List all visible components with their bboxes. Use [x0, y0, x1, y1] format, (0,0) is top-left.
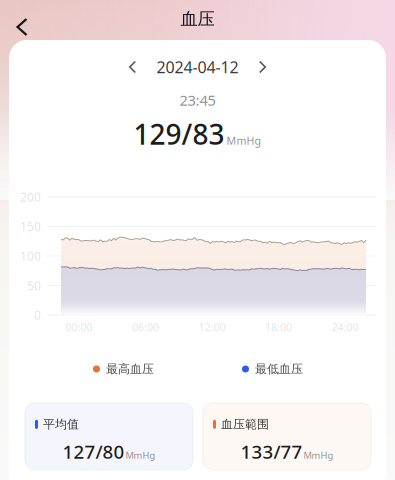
staticText: 200 — [20, 189, 41, 205]
button[interactable]: 血压範围 — [203, 403, 371, 470]
button[interactable]: Back — [0, 12, 44, 42]
staticText: 06:00 — [132, 320, 159, 334]
button[interactable]: Previous day — [119, 54, 145, 80]
staticText: MmHg — [303, 449, 333, 461]
staticText: 12:00 — [198, 320, 225, 334]
staticText: 133/77 — [240, 439, 302, 464]
staticText: 0 — [34, 307, 41, 323]
staticText: 血压 — [180, 8, 214, 30]
staticText: 2024-04-12 — [156, 56, 238, 78]
staticText: 最高血压 — [106, 362, 154, 376]
button[interactable]: Next day — [249, 54, 275, 80]
staticText: 00:00 — [65, 320, 92, 334]
staticText: 23:45 — [179, 90, 215, 110]
staticText: MmHg — [125, 449, 155, 461]
staticText: MmHg — [226, 134, 261, 148]
staticText: 127/80 — [62, 439, 124, 464]
staticText: 平均值 — [43, 417, 79, 432]
staticText: 18:00 — [265, 320, 292, 334]
staticText: 最低血压 — [255, 362, 303, 376]
staticText: 129/83 — [133, 115, 224, 153]
staticText: 150 — [20, 218, 41, 234]
staticText: 100 — [20, 248, 41, 264]
staticText: 24:00 — [331, 320, 358, 334]
staticText: 50 — [27, 277, 41, 293]
button[interactable]: 平均值 — [25, 403, 193, 470]
staticText: 血压範围 — [221, 417, 269, 432]
